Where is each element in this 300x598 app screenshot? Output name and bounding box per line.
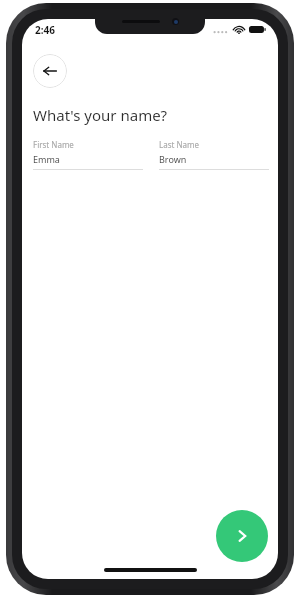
button[interactable]: Next bbox=[216, 510, 268, 562]
staticText: First Name bbox=[33, 139, 74, 150]
staticText: What's your name? bbox=[33, 105, 168, 125]
button[interactable]: Back bbox=[33, 54, 67, 88]
staticText: 2:46 bbox=[35, 23, 55, 37]
button[interactable]: Last Name bbox=[159, 139, 269, 170]
staticText: Brown bbox=[159, 153, 187, 165]
button[interactable]: First Name bbox=[33, 139, 143, 170]
staticText: Last Name bbox=[159, 139, 200, 150]
staticText: Emma bbox=[33, 153, 60, 165]
